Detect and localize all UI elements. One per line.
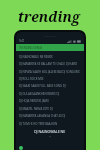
button[interactable]: TRENDING SONGS [16,44,84,51]
button[interactable]: DJ HOJA PARDESI JAMU [16,97,84,104]
staticText: DJ KAMARIYA LAHANGA CHAT 40 DJ [19,114,66,118]
staticText: DJ NAINOWALE NE REMIX [19,55,53,59]
staticText: DJ MAATEL PARVA DITE DJ [19,107,53,111]
button[interactable]: DJ KAMARIYA KE BALLAM TE CHALE DJ HARD A… [16,60,84,67]
button[interactable]: DJ TUM HI HO TERE BAAHON [16,120,84,127]
staticText: DJ HOJA PARDESI JAMU [19,99,50,103]
staticText: DJ NAINOWALE NE [34,129,66,134]
button[interactable]: DJ GULABI AANKHEN REMIX DJ [16,90,84,97]
staticText: DJ SAAKI SAAKI FULL BASS SONG DJ [19,84,66,88]
button[interactable]: Play [19,146,23,150]
button[interactable]: DJ NIPATA SAATH BOL JALEBI BAI DJ SONG M… [16,68,84,75]
button[interactable]: DJ KAMARIYA LAHANGA CHAT 40 DJ [16,112,84,119]
button[interactable]: DJ MAATEL PARVA DITE DJ [16,105,84,112]
staticText: TRENDING SONGS [19,46,43,50]
staticText: DJ ROLL ROCK MIX [19,77,44,81]
button[interactable]: DJ NAINOWALE NE REMIX [16,53,84,60]
staticText: DJ TUM HI HO TERE BAAHON [19,122,58,126]
staticText: DJ NIPATA SAATH BOL JALEBI BAI DJ SONG M… [19,70,80,74]
staticText: DJ [49,135,52,138]
staticText: 9:41 [19,39,25,43]
staticText: DJ GULABI AANKHEN REMIX DJ [19,92,60,96]
button[interactable]: DJ ROLL ROCK MIX [16,75,84,82]
staticText: trending [18,7,80,26]
staticText: DJ KAMARIYA KE BALLAM TE CHALE DJ HARD A… [19,62,81,66]
button[interactable]: DJ SAAKI SAAKI FULL BASS SONG DJ [16,82,84,89]
